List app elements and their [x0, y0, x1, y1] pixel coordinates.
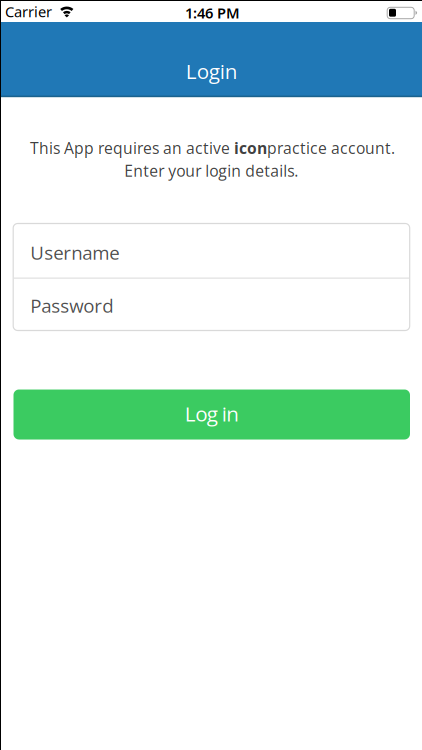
staticText: Log in — [185, 399, 239, 428]
staticText: Carrier — [5, 2, 52, 21]
staticText: This App requires an active iconpractice… — [30, 137, 395, 158]
staticText: Login — [186, 57, 238, 85]
staticText: 1:46 PM — [185, 3, 240, 23]
staticText: Username — [30, 240, 119, 265]
staticText: Enter your login details. — [124, 160, 298, 181]
staticText: Password — [30, 293, 113, 318]
button[interactable]: Log in — [13, 389, 410, 439]
button[interactable]: Username — [13, 223, 391, 277]
button[interactable]: Password — [13, 223, 391, 276]
